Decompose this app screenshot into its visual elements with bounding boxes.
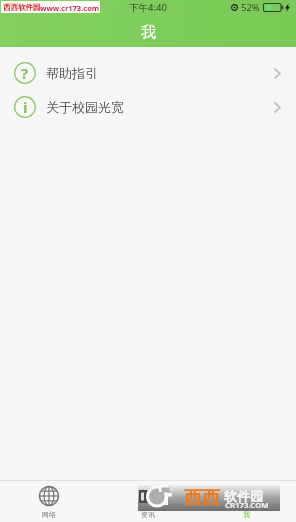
staticText: ? xyxy=(21,63,29,83)
button[interactable]: ? xyxy=(0,56,296,90)
staticText: www.cr173.com xyxy=(40,3,100,13)
staticText: CR173.COM xyxy=(225,500,269,511)
button[interactable]: Me xyxy=(197,481,296,522)
staticText: 52% xyxy=(241,1,260,14)
staticText: 网络 xyxy=(42,510,56,519)
staticText: 我 xyxy=(141,23,156,42)
staticText: 帮助指引 xyxy=(46,65,98,81)
staticText: 资讯 xyxy=(141,510,155,519)
button[interactable]: i xyxy=(0,90,296,124)
staticText: i xyxy=(23,97,28,117)
staticText: 西西软件园 xyxy=(3,3,41,12)
staticText: 西西 xyxy=(184,487,220,510)
staticText: 下午4:40 xyxy=(129,1,167,14)
button[interactable]: News xyxy=(98,481,197,522)
staticText: 软件园 xyxy=(224,488,263,504)
staticText: 关于校园光宽 xyxy=(46,99,124,115)
staticText: 我 xyxy=(243,510,250,519)
button[interactable]: Network xyxy=(0,481,98,522)
